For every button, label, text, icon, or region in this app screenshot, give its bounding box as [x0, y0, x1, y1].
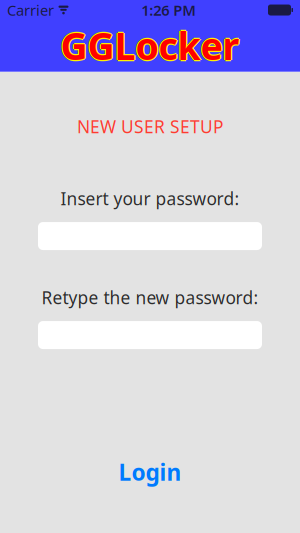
staticText: GGLocker	[59, 21, 238, 70]
staticText: Carrier	[7, 0, 54, 20]
staticText: Insert your password:	[60, 187, 239, 210]
staticText: GGLocker	[60, 21, 239, 70]
staticText: Retype the new password:	[41, 286, 258, 309]
staticText: GGLocker	[60, 19, 239, 69]
staticText: Login	[118, 457, 181, 487]
staticText: GGLocker	[62, 21, 241, 70]
button[interactable]: Login	[0, 449, 300, 495]
staticText: 1:26 PM	[141, 0, 196, 20]
staticText: GGLocker	[60, 22, 239, 71]
staticText: NEW USER SETUP	[77, 115, 223, 138]
